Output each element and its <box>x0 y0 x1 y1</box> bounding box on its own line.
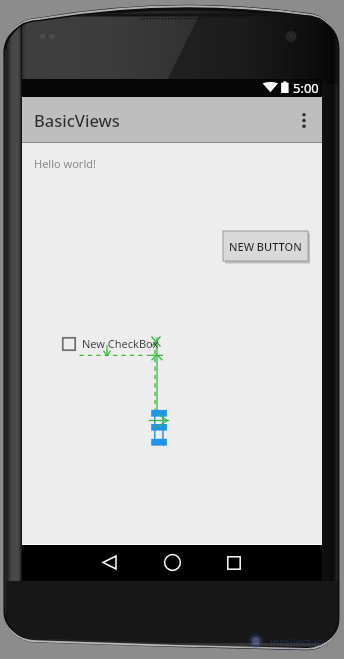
button[interactable]: Home <box>154 547 190 578</box>
staticText: 5:00 <box>293 79 319 97</box>
button[interactable]: New CheckBox <box>62 332 159 354</box>
button[interactable]: More options <box>286 102 322 138</box>
staticText: BasicViews <box>34 109 120 131</box>
staticText: NEW BUTTON <box>229 239 302 254</box>
staticText: New CheckBox <box>82 336 159 351</box>
button[interactable]: Recents <box>216 547 252 578</box>
staticText: intellect.icu <box>270 634 329 649</box>
button[interactable]: Back <box>91 547 127 578</box>
staticText: новости науки <box>270 645 313 653</box>
button[interactable]: NEW BUTTON <box>223 231 308 261</box>
staticText: Hello world! <box>34 156 96 171</box>
